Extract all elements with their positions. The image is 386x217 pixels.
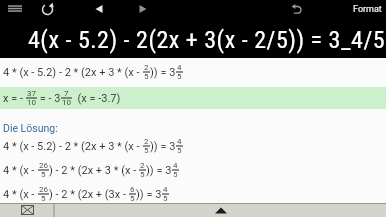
staticText: 6 (130, 185, 135, 194)
staticText: 26 (39, 185, 48, 194)
staticText: 26 (39, 161, 48, 170)
staticText: 2 (144, 63, 149, 72)
staticText: ) - 2 * (2x + 3 * (x - (49, 164, 139, 177)
staticText: 4 (177, 137, 182, 146)
staticText: 10 (62, 98, 71, 107)
button[interactable] (136, 2, 150, 16)
staticText: 4 * (x - (3, 188, 38, 201)
staticText: 2 (144, 137, 149, 146)
staticText: 5 (41, 194, 46, 203)
staticText: )) = 3 (136, 188, 162, 201)
staticText: 4 * (x - 5.2) - 2 * (2x + 3 * (x - (3, 140, 143, 153)
staticText: 37 (27, 89, 36, 98)
staticText: 5 (144, 146, 149, 155)
staticText: = - 3 (37, 92, 61, 105)
button[interactable] (55, 203, 386, 217)
staticText: )) = 3 (146, 164, 172, 177)
staticText: )) = 3 (150, 66, 176, 79)
staticText: )) = 3 (150, 140, 176, 153)
staticText: Die Lösung: (3, 122, 58, 134)
staticText: 4 * (x - (3, 164, 38, 177)
staticText: ) - 2 * (2x + (3x - (49, 188, 129, 201)
staticText: 5 (144, 72, 149, 81)
button[interactable] (92, 2, 106, 16)
staticText: 4 (173, 161, 178, 170)
staticText: 4 * (x - 5.2) - 2 * (2x + 3 * (x - (3, 66, 143, 79)
staticText: 10 (27, 98, 36, 107)
button[interactable] (39, 1, 56, 18)
button[interactable]: Format (348, 1, 386, 17)
staticText: 5 (173, 170, 178, 179)
staticText: 5 (163, 194, 168, 203)
staticText: 5 (130, 194, 135, 203)
staticText: Format (353, 4, 382, 15)
staticText: 5 (177, 146, 182, 155)
staticText: (x = -3.7) (72, 92, 121, 105)
staticText: 4 (177, 63, 182, 72)
button[interactable] (0, 203, 54, 217)
staticText: 5 (41, 170, 46, 179)
staticText: 2 (140, 161, 145, 170)
button[interactable] (6, 3, 26, 15)
staticText: 4(x - 5.2) - 2(2x + 3(x - 2/5)) = 3_4/5 (28, 26, 386, 54)
staticText: 5 (140, 170, 145, 179)
staticText: 5 (177, 72, 182, 81)
staticText: 4 (163, 185, 168, 194)
staticText: 7 (64, 89, 69, 98)
staticText: x = - (3, 92, 26, 105)
button[interactable] (289, 1, 305, 17)
